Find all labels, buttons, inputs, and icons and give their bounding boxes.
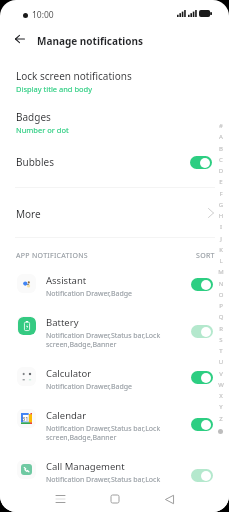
button[interactable]: Back [7, 26, 33, 52]
button[interactable]: Toggle [191, 371, 213, 384]
staticText: Calculator [46, 367, 92, 380]
button[interactable]: Bubbles [0, 148, 229, 178]
button[interactable]: 31 [0, 403, 229, 453]
staticText: screen,Badge,Banner [46, 433, 117, 443]
staticText: Number or dot [16, 125, 69, 135]
staticText: 10:00 [32, 9, 54, 21]
staticText: Lock screen notifications [16, 69, 132, 83]
staticText: A [215, 133, 227, 141]
staticText: Notification Drawer,Status bar,Lock [46, 424, 161, 434]
button[interactable]: Assistant [0, 268, 229, 310]
staticText: Notification Drawer,Badge [46, 289, 133, 299]
staticText: U [215, 358, 227, 366]
button[interactable]: Home [101, 485, 129, 512]
staticText: X [215, 392, 227, 400]
staticText: SORT [196, 251, 215, 261]
staticText: O [215, 291, 227, 299]
staticText: S [215, 336, 227, 344]
staticText: L [215, 257, 227, 265]
staticText: screen,Badge,Banner [46, 340, 117, 350]
button[interactable]: Toggle [191, 469, 213, 482]
staticText: Q [215, 313, 227, 321]
staticText: T [215, 347, 227, 355]
staticText: N [215, 280, 227, 288]
staticText: Display title and body [16, 84, 92, 94]
staticText: Assistant [46, 274, 87, 287]
button[interactable]: Badges [0, 106, 229, 142]
staticText: Manage notifications [37, 34, 143, 48]
button[interactable]: Lock screen notifications [0, 65, 229, 101]
button[interactable]: Calculator [0, 361, 229, 403]
staticText: Calendar [46, 409, 87, 422]
staticText: I [215, 223, 227, 231]
staticText: # [215, 122, 227, 130]
staticText: Z [215, 415, 227, 423]
staticText: Call Management [46, 460, 125, 473]
button[interactable]: Toggle [191, 278, 213, 291]
staticText: F [215, 190, 227, 198]
staticText: B [215, 145, 227, 153]
staticText: R [215, 325, 227, 333]
button[interactable]: Back [155, 485, 183, 512]
staticText: W [215, 381, 227, 389]
staticText: K [215, 246, 227, 254]
staticText: C [215, 156, 227, 164]
staticText: Bubbles [16, 155, 54, 169]
staticText: More [16, 207, 41, 221]
button[interactable]: Toggle [191, 418, 213, 431]
staticText: Notification Drawer,Badge [46, 382, 133, 392]
staticText: Battery [46, 316, 79, 329]
staticText: 31 [22, 415, 29, 422]
button[interactable]: Call Management [0, 454, 229, 504]
staticText: E [215, 178, 227, 186]
staticText: D [215, 167, 227, 175]
staticText: Y [215, 403, 227, 411]
staticText: Badges [16, 110, 51, 124]
button[interactable]: Alphabet index [215, 122, 227, 442]
button[interactable]: Battery [0, 310, 229, 360]
staticText: G [215, 201, 227, 209]
staticText: M [215, 268, 227, 276]
staticText: J [215, 235, 227, 243]
button[interactable]: Toggle [191, 325, 213, 338]
staticText: P [215, 302, 227, 310]
button[interactable]: More [0, 200, 229, 228]
staticText: Notification Drawer,Status bar,Lock [46, 331, 161, 341]
staticText: APP NOTIFICATIONS [16, 251, 89, 261]
button[interactable]: SORT [192, 247, 219, 265]
staticText: Notification Drawer,Status bar,Lock [46, 475, 161, 485]
staticText: V [215, 370, 227, 378]
staticText: H [215, 212, 227, 220]
button[interactable]: Recents [46, 485, 74, 512]
button[interactable]: Toggle [190, 156, 212, 169]
